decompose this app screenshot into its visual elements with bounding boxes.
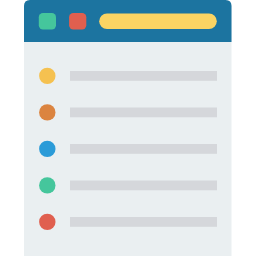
button[interactable]: List item 5 [24, 204, 232, 241]
button[interactable]: New document [39, 13, 56, 30]
button[interactable]: Delete [69, 13, 86, 30]
button[interactable]: List item 1 [24, 58, 232, 95]
button[interactable]: List item 4 [24, 167, 232, 204]
button[interactable]: List item 3 [24, 131, 232, 168]
button[interactable]: Search [99, 13, 217, 29]
button[interactable]: List item 2 [24, 94, 232, 131]
